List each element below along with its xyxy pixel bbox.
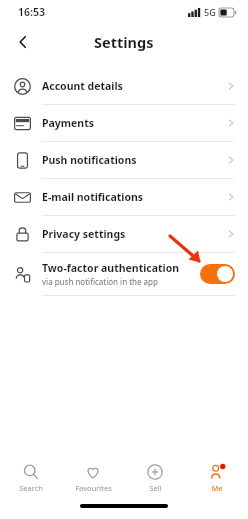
button[interactable]: Payments [0,104,248,141]
staticText: Push notifications [42,153,137,167]
staticText: Sell [149,483,162,493]
button[interactable]: Me [186,456,248,500]
button[interactable]: Two-factor authentication toggle [200,264,235,284]
staticText: via push notification in the app [42,276,158,287]
staticText: Privacy settings [42,227,126,241]
staticText: 16:53 [18,5,45,19]
button[interactable]: Privacy settings [0,215,248,252]
button[interactable]: Account details [0,68,248,104]
button[interactable]: E-mail notifications [0,178,248,215]
button[interactable]: Push notifications [0,141,248,178]
button[interactable]: Two-factor authentication [0,252,248,295]
staticText: Settings [94,32,154,52]
staticText: Favourites [75,483,112,493]
button[interactable]: Search [0,456,62,500]
staticText: Payments [42,116,94,130]
button[interactable]: Sell [124,456,186,500]
staticText: Search [19,483,43,493]
button[interactable]: Back [6,25,40,59]
staticText: E-mail notifications [42,190,144,204]
staticText: Account details [42,79,123,93]
button[interactable]: Favourites [62,456,124,500]
staticText: Two-factor authentication [42,261,180,275]
staticText: 5G [204,6,216,18]
staticText: Me [211,483,223,493]
